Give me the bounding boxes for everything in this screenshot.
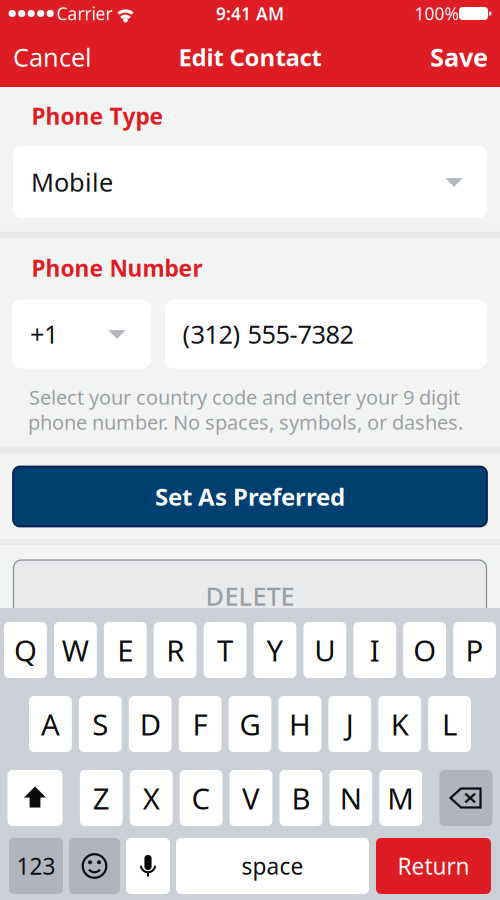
staticText: Q [14,630,37,669]
staticText: Save [430,40,488,74]
button[interactable]: O [403,622,446,678]
button[interactable]: S [79,696,122,752]
button[interactable]: C [180,770,222,826]
button[interactable]: E [104,622,147,678]
staticText: Carrier [56,2,112,25]
staticText: W [62,630,89,669]
staticText: K [391,704,409,743]
staticText: DELETE [205,579,294,613]
button[interactable]: J [328,696,371,752]
button[interactable]: D [129,696,172,752]
staticText: phone number. No spaces, symbols, or das… [28,409,463,435]
button[interactable]: space [176,838,369,894]
staticText: space [241,851,303,881]
button[interactable]: K [378,696,421,752]
staticText: R [166,630,184,669]
button[interactable]: H [278,696,321,752]
staticText: H [289,704,311,743]
button[interactable]: Emoji [69,838,120,894]
staticText: A [41,704,60,743]
staticText: U [314,630,335,669]
button[interactable]: Y [253,622,296,678]
button[interactable]: T [204,622,246,678]
button[interactable]: A [29,696,72,752]
staticText: I [370,630,380,669]
staticText: Phone Type [31,101,163,131]
button[interactable]: Cancel [13,35,103,79]
button[interactable]: U [303,622,346,678]
staticText: Phone Number [31,253,202,283]
staticText: Set As Preferred [155,481,345,512]
button[interactable]: Return [376,838,491,894]
button[interactable]: W [54,622,97,678]
staticText: V [242,778,260,817]
button[interactable]: Q [4,622,47,678]
staticText: O [413,630,436,669]
staticText: Edit Contact [178,41,321,73]
staticText: Y [266,630,283,669]
staticText: J [346,704,354,743]
staticText: 9:41 AM [216,2,284,25]
button[interactable]: N [329,770,372,826]
staticText: Cancel [13,40,92,74]
staticText: Z [93,778,110,817]
staticText: 123 [16,851,55,881]
staticText: Mobile [31,165,113,199]
staticText: P [465,630,483,669]
button[interactable]: 123 [9,838,63,894]
staticText: S [92,704,108,743]
button[interactable]: I [353,622,396,678]
button[interactable]: M [379,770,422,826]
button[interactable]: Shift [7,770,62,826]
button[interactable]: Set As Preferred [13,466,487,526]
button[interactable]: R [154,622,196,678]
staticText: C [192,778,211,817]
staticText: M [387,778,414,817]
staticText: D [140,704,161,743]
button[interactable]: L [428,696,471,752]
staticText: L [442,704,457,743]
button[interactable]: F [179,696,221,752]
staticText: B [291,778,310,817]
button[interactable]: X [130,770,173,826]
button[interactable]: Z [80,770,123,826]
button[interactable]: P [453,622,496,678]
staticText: 100% [414,2,458,25]
button[interactable]: Delete [439,770,492,826]
button[interactable]: DELETE [13,560,486,632]
staticText: X [143,778,160,817]
button[interactable]: +1 [12,299,151,368]
button[interactable]: G [229,696,271,752]
button[interactable]: Mobile [13,146,487,218]
button[interactable]: (312) 555-7382 [165,299,487,368]
staticText: Select your country code and enter your … [29,384,460,410]
staticText: Return [397,851,469,881]
staticText: G [239,704,260,743]
button[interactable]: Save [418,35,488,79]
staticText: F [193,704,208,743]
staticText: +1 [30,317,58,351]
staticText: T [217,630,233,669]
button[interactable]: V [230,770,272,826]
staticText: E [117,630,133,669]
button[interactable]: Dictation [126,838,170,894]
staticText: N [340,778,362,817]
staticText: (312) 555-7382 [182,317,353,351]
button[interactable]: B [279,770,322,826]
